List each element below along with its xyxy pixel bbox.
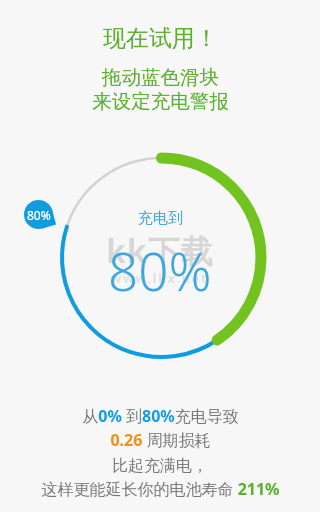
- staticText: 从0% 到80%充电导致: [82, 405, 239, 427]
- staticText: 这样更能延长你的电池寿命 211%: [41, 478, 280, 500]
- staticText: 现在试用！: [103, 24, 218, 53]
- staticText: 80%: [27, 207, 51, 223]
- staticText: 拖动蓝色滑块 来设定充电警报: [92, 65, 229, 114]
- staticText: www.lkx.net: [111, 270, 209, 286]
- staticText: 0.26 周期损耗: [110, 429, 211, 451]
- staticText: 比起充满电，: [112, 456, 208, 476]
- staticText: kk下载: [106, 229, 214, 273]
- button[interactable]: Charge alarm slider handle, 80 percent: [24, 200, 71, 229]
- staticText: 充电到: [138, 209, 183, 228]
- staticText: 80%: [108, 234, 212, 306]
- button[interactable]: Charge limit dial, 80 percent: [50, 146, 273, 369]
